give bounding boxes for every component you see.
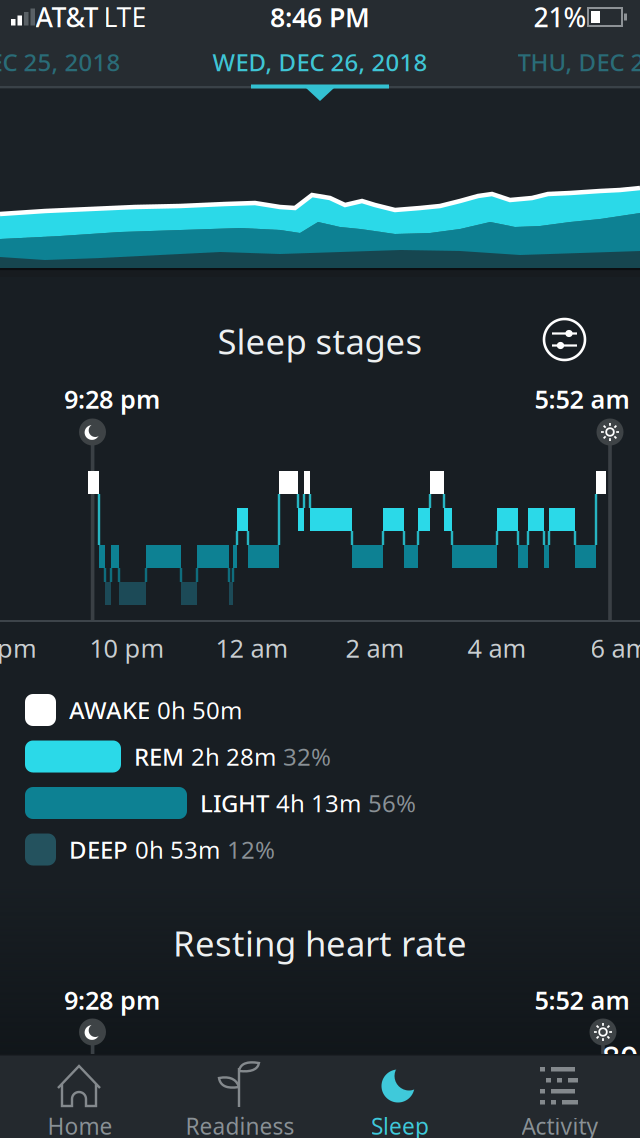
staticText: Activity bbox=[521, 1111, 598, 1138]
staticText: 5:52 am bbox=[534, 983, 629, 1017]
staticText: 6 am bbox=[590, 631, 640, 665]
staticText: 12% bbox=[227, 834, 275, 865]
staticText: 21% bbox=[533, 0, 586, 35]
staticText: Resting heart rate bbox=[173, 920, 467, 966]
button[interactable]: Sleep bbox=[320, 1054, 480, 1138]
staticText: 10 pm bbox=[89, 631, 164, 665]
button[interactable]: Readiness bbox=[160, 1054, 320, 1138]
staticText: 8:46 PM bbox=[270, 0, 370, 35]
staticText: pm bbox=[0, 631, 37, 665]
staticText: AWAKE bbox=[69, 694, 150, 726]
button[interactable]: WED, DEC 26, 2018 bbox=[0, 0, 640, 1138]
staticText: DEEP bbox=[69, 834, 128, 865]
staticText: 80 bbox=[602, 1036, 638, 1078]
staticText: 0h 53m bbox=[135, 834, 220, 865]
staticText: 0h 50m bbox=[157, 694, 242, 726]
staticText: Home bbox=[47, 1111, 112, 1138]
button[interactable]: Home bbox=[0, 1054, 160, 1138]
staticText: THU, DEC 27 bbox=[517, 46, 640, 78]
staticText: LTE bbox=[103, 0, 146, 35]
staticText: LIGHT bbox=[200, 787, 269, 819]
staticText: AT&T bbox=[35, 0, 98, 35]
staticText: 5:52 am bbox=[534, 382, 629, 416]
staticText: 32% bbox=[283, 741, 331, 772]
staticText: 2h 28m bbox=[191, 741, 276, 772]
staticText: Readiness bbox=[185, 1111, 294, 1138]
button[interactable]: DEC 25, 2018 bbox=[0, 0, 640, 1138]
staticText: 12 am bbox=[215, 631, 288, 665]
staticText: 9:28 pm bbox=[64, 382, 160, 416]
staticText: 56% bbox=[368, 787, 416, 819]
staticText: 9:28 pm bbox=[64, 983, 160, 1017]
staticText: 2 am bbox=[345, 631, 404, 665]
staticText: REM bbox=[134, 741, 184, 772]
staticText: DEC 25, 2018 bbox=[0, 46, 120, 78]
staticText: Sleep bbox=[371, 1111, 429, 1138]
staticText: WED, DEC 26, 2018 bbox=[212, 46, 427, 78]
staticText: 4 am bbox=[467, 631, 526, 665]
button[interactable]: Sleep stages options bbox=[0, 0, 640, 1138]
button[interactable]: Activity bbox=[480, 1054, 640, 1138]
staticText: 4h 13m bbox=[276, 787, 361, 819]
staticText: Sleep stages bbox=[217, 318, 422, 364]
button[interactable]: THU, DEC 27 bbox=[0, 0, 640, 1138]
